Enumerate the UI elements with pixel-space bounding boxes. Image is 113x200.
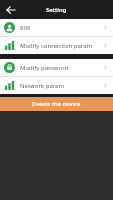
staticText: Network param xyxy=(20,82,102,90)
staticText: 999 xyxy=(20,24,102,32)
staticText: Modify connection param xyxy=(20,42,102,50)
button[interactable]: Network param xyxy=(0,77,113,94)
button[interactable]: Delete the device xyxy=(0,97,113,111)
button[interactable]: Modify connection param xyxy=(0,37,113,54)
staticText: Modify password xyxy=(20,64,102,72)
button[interactable]: 999 xyxy=(0,19,113,36)
button[interactable]: Back xyxy=(4,3,18,17)
staticText: Setting xyxy=(46,6,67,14)
staticText: Delete the device xyxy=(32,100,81,108)
button[interactable]: Modify password xyxy=(0,59,113,76)
